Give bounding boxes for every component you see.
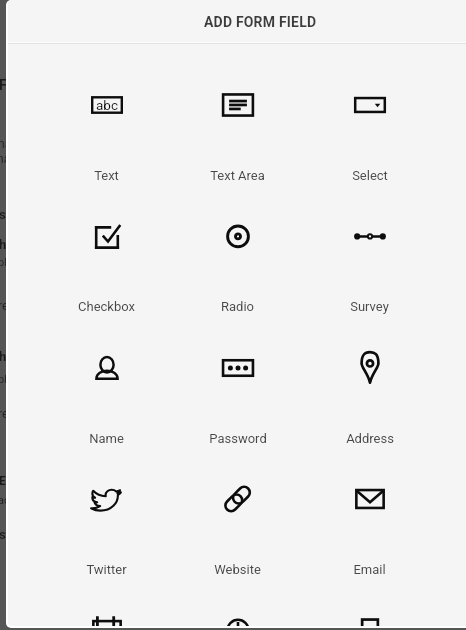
other: Text Area: [214, 81, 262, 129]
staticText: Name: [89, 431, 124, 446]
staticText: Form: [0, 77, 32, 93]
other: Date: [83, 606, 131, 626]
other: Checkbox: [83, 212, 131, 260]
button[interactable]: Website: [172, 438, 303, 570]
staticText: Twitter: [86, 562, 127, 577]
other: Password: [214, 344, 262, 392]
staticText: here: [0, 237, 25, 252]
staticText: address: [0, 494, 38, 507]
staticText: placeholder: [0, 256, 56, 269]
staticText: Text Area: [210, 168, 265, 183]
staticText: ADD FORM FIELD: [204, 14, 317, 30]
button[interactable]: Name: [41, 307, 172, 439]
other: Address: [346, 344, 394, 392]
other: Survey: [346, 212, 394, 260]
other: Website: [214, 475, 262, 523]
staticText: Checkbox: [78, 299, 135, 314]
other: Select: [346, 81, 394, 129]
other: Email: [346, 475, 394, 523]
staticText: placeholder: [0, 373, 56, 386]
staticText: name: [0, 137, 29, 151]
staticText: Survey: [350, 299, 389, 314]
staticText: Email: [0, 474, 29, 488]
staticText: Radio: [221, 299, 254, 314]
other: Radio: [214, 212, 262, 260]
staticText: nam: [0, 152, 21, 166]
staticText: Text: [94, 168, 119, 183]
button[interactable]: Twitter: [41, 438, 172, 570]
staticText: required: [0, 407, 42, 421]
other: Twitter: [83, 475, 131, 523]
staticText: Email: [353, 562, 386, 577]
button[interactable]: Email: [304, 438, 435, 570]
other: Text: [83, 81, 131, 129]
other: Name: [83, 344, 131, 392]
button[interactable]: Checkbox: [41, 175, 172, 307]
button[interactable]: Survey: [304, 175, 435, 307]
staticText: subject: [0, 207, 42, 222]
button[interactable]: Text: [41, 44, 172, 176]
button[interactable]: Time: [172, 569, 303, 626]
staticText: Select: [352, 168, 388, 183]
button[interactable]: Text Area: [172, 44, 303, 176]
staticText: here: [0, 349, 25, 364]
button[interactable]: Address: [304, 307, 435, 439]
staticText: Address: [346, 431, 394, 446]
other: Time: [214, 606, 262, 626]
button[interactable]: Radio: [172, 175, 303, 307]
button[interactable]: Password: [172, 307, 303, 439]
button[interactable]: Date: [41, 569, 172, 626]
button[interactable]: Box: [304, 569, 435, 626]
staticText: abc: [96, 97, 118, 113]
staticText: Password: [209, 431, 267, 446]
staticText: required: [0, 299, 42, 313]
other: Box: [346, 606, 394, 626]
staticText: Website: [214, 562, 261, 577]
staticText: step: [0, 527, 25, 542]
button[interactable]: Select: [304, 44, 435, 176]
